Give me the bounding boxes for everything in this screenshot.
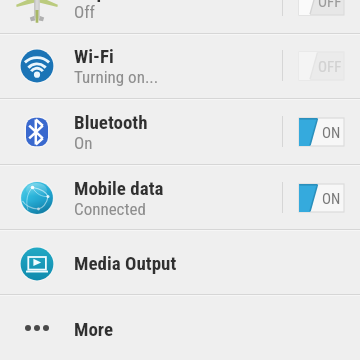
staticText: Media Output (74, 252, 177, 274)
staticText: Turning on... (74, 67, 159, 87)
button[interactable]: Switch off (299, 52, 344, 80)
button[interactable]: Switch off (299, 0, 344, 15)
staticText: More (74, 318, 114, 340)
staticText: Mobile data (74, 177, 164, 199)
button[interactable]: Media Output (0, 231, 360, 296)
staticText: OFF (318, 58, 342, 76)
staticText: Airplane mode (74, 0, 185, 2)
button[interactable]: Switch on (299, 118, 344, 146)
staticText: ON (322, 124, 341, 142)
staticText: Bluetooth (74, 111, 148, 133)
button[interactable]: Airplane mode (0, 0, 360, 33)
button[interactable]: Wi-Fi (0, 33, 360, 98)
button[interactable]: Mobile data (0, 165, 360, 230)
staticText: Off (74, 2, 95, 22)
button[interactable]: More (0, 296, 360, 360)
staticText: Connected (74, 199, 146, 219)
button[interactable]: Switch on (299, 184, 344, 212)
staticText: On (74, 133, 93, 153)
staticText: OFF (318, 0, 342, 11)
button[interactable]: Bluetooth (0, 99, 360, 164)
staticText: ON (322, 190, 341, 208)
staticText: Wi-Fi (74, 45, 114, 67)
